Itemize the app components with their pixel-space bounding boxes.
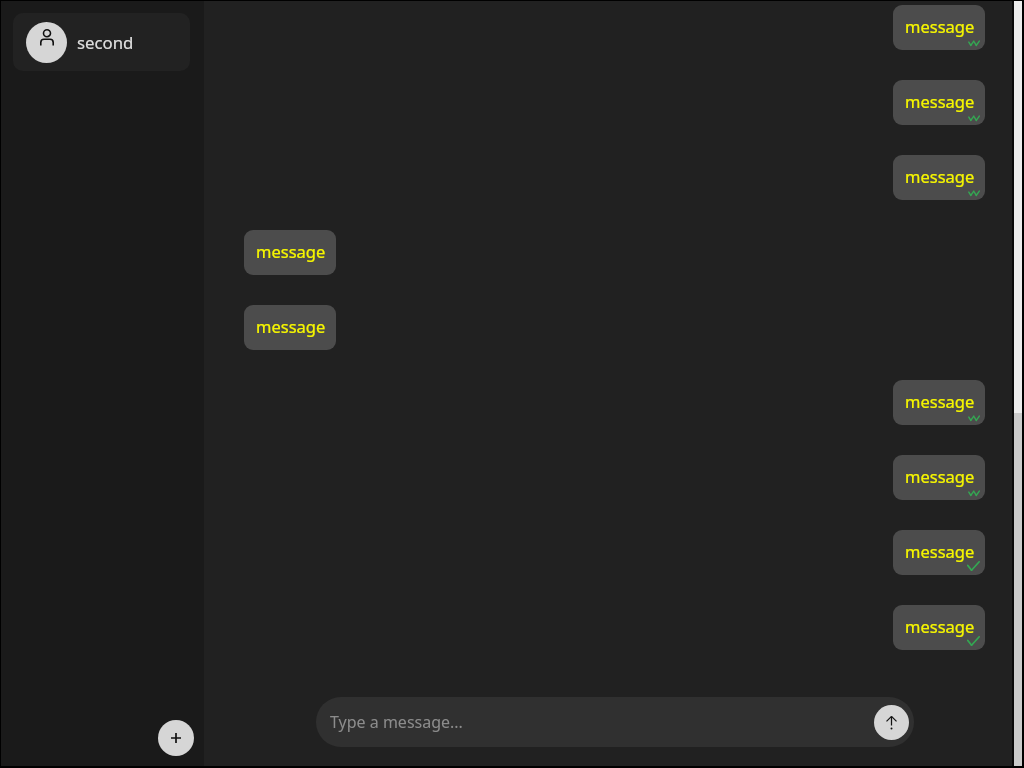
staticText: message bbox=[256, 315, 326, 337]
button[interactable]: message bbox=[244, 305, 336, 350]
staticText: message bbox=[905, 615, 975, 637]
button[interactable]: message bbox=[893, 5, 985, 50]
button[interactable]: message bbox=[893, 605, 985, 650]
button[interactable]: message bbox=[893, 530, 985, 575]
button[interactable]: message bbox=[893, 155, 985, 200]
button[interactable]: message bbox=[893, 80, 985, 125]
staticText: message bbox=[256, 240, 326, 262]
button[interactable]: message bbox=[244, 230, 336, 275]
staticText: message bbox=[905, 390, 975, 412]
button[interactable]: second bbox=[13, 13, 190, 71]
button[interactable]: Send bbox=[874, 705, 909, 740]
staticText: second bbox=[77, 31, 134, 54]
button[interactable]: message bbox=[893, 380, 985, 425]
staticText: message bbox=[905, 465, 975, 487]
button[interactable]: message bbox=[893, 455, 985, 500]
button[interactable]: New chat bbox=[158, 720, 194, 756]
staticText: message bbox=[905, 165, 975, 187]
staticText: message bbox=[905, 15, 975, 37]
staticText: message bbox=[905, 540, 975, 562]
staticText: message bbox=[905, 90, 975, 112]
staticText: Type a message... bbox=[330, 711, 874, 733]
